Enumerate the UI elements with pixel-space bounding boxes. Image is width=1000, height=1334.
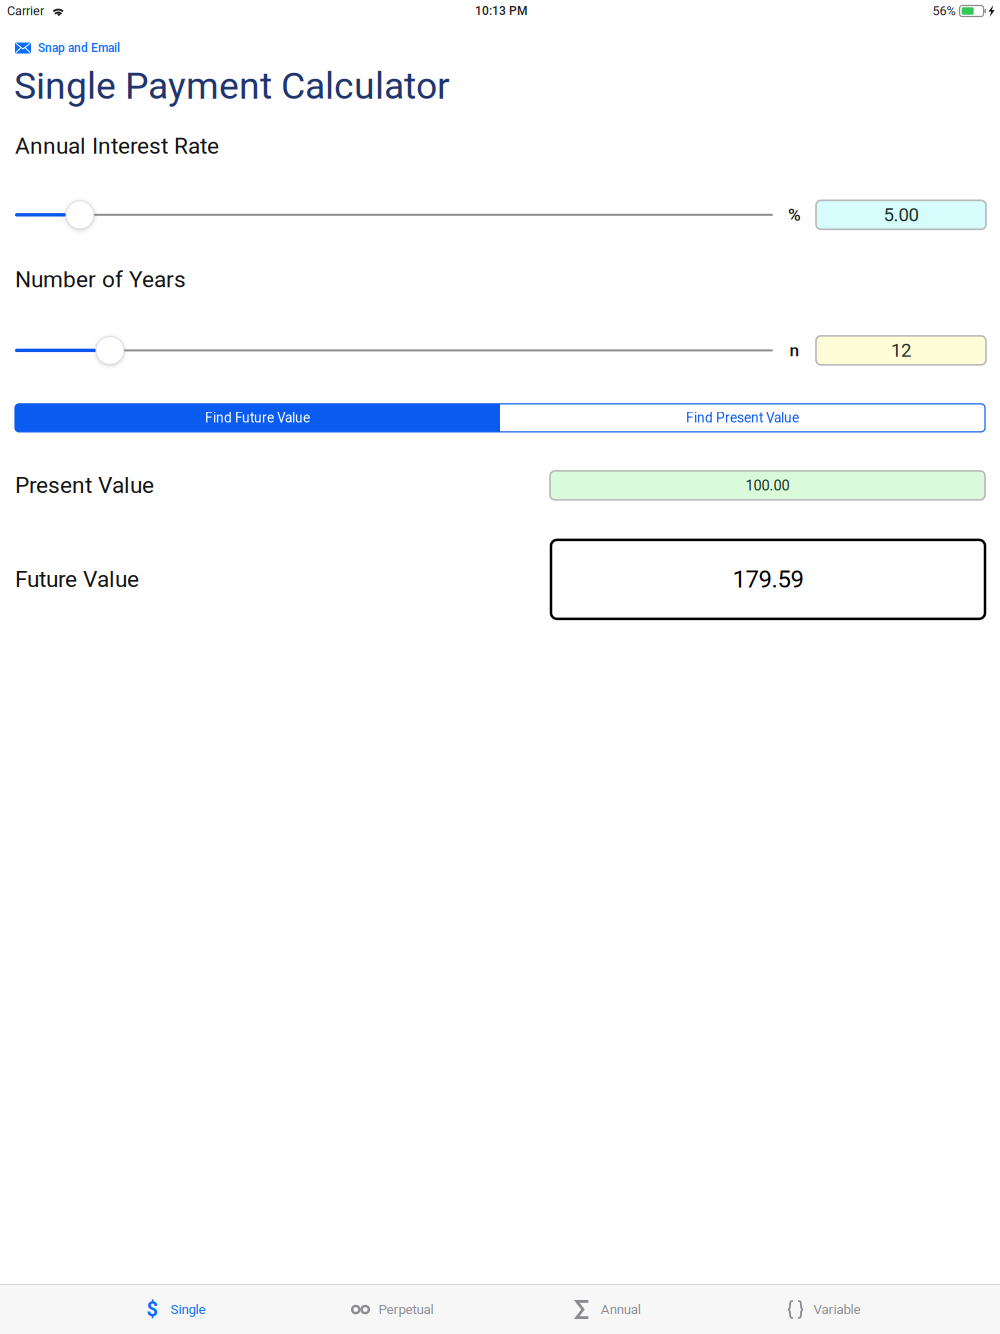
staticText: 10:13 PM [475, 4, 527, 18]
staticText: Annual Interest Rate [15, 133, 219, 159]
staticText: Find Present Value [686, 410, 799, 426]
staticText: % [788, 205, 801, 225]
staticText: 56% [933, 4, 956, 18]
staticText: n [789, 340, 799, 360]
button[interactable]: Variable [716, 1285, 932, 1334]
button[interactable]: $ [68, 1285, 284, 1334]
button[interactable]: Annual [500, 1285, 716, 1334]
staticText: Single Payment Calculator [14, 64, 450, 108]
button[interactable]: Snap and Email [0, 41, 120, 55]
staticText: Single [170, 1302, 205, 1317]
staticText: 100.00 [745, 477, 789, 494]
staticText: Snap and Email [38, 41, 120, 55]
button[interactable]: Perpetual [284, 1285, 500, 1334]
staticText: Variable [814, 1302, 861, 1317]
staticText: 179.59 [732, 565, 803, 593]
staticText: Carrier [7, 4, 44, 18]
staticText: Present Value [15, 472, 154, 499]
staticText: $ [146, 1298, 157, 1321]
staticText: 12 [891, 339, 911, 361]
staticText: Number of Years [15, 266, 186, 293]
staticText: 5.00 [883, 204, 918, 226]
staticText: Annual [601, 1302, 641, 1317]
staticText: Future Value [15, 566, 139, 593]
staticText: Perpetual [378, 1302, 433, 1317]
staticText: Find Future Value [205, 410, 310, 426]
button[interactable]: Find Future Value [15, 404, 500, 432]
button[interactable]: Find Present Value [500, 404, 985, 432]
